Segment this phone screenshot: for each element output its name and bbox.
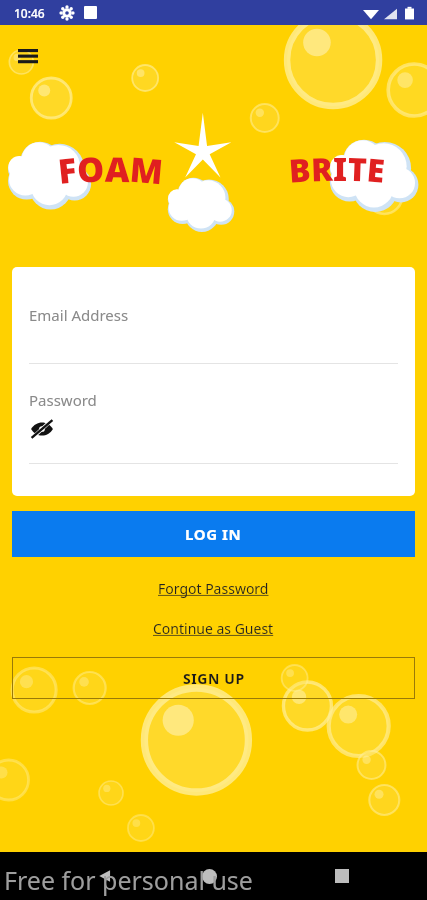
button[interactable]: Back [96, 867, 114, 885]
staticText: Forgot Password [158, 579, 269, 598]
button[interactable]: Continue as Guest [145, 615, 282, 642]
staticText: R [310, 147, 334, 191]
staticText: E [365, 147, 387, 193]
button[interactable]: SIGN UP [12, 657, 415, 699]
button[interactable]: Forgot Password [150, 575, 277, 602]
button[interactable]: Password [29, 390, 398, 464]
button[interactable]: Menu [8, 36, 48, 76]
staticText: B [287, 147, 312, 193]
staticText: F [56, 146, 79, 194]
staticText: I [333, 147, 348, 191]
staticText: Email Address [29, 305, 129, 325]
button[interactable]: Email Address [29, 296, 398, 364]
staticText: Password [29, 390, 97, 410]
other: Show password [29, 418, 55, 440]
staticText: T [347, 147, 368, 191]
staticText: Free for personal use [4, 863, 253, 897]
staticText: LOG IN [185, 524, 242, 544]
staticText: M [128, 146, 165, 194]
staticText: O [76, 145, 106, 193]
staticText: SIGN UP [183, 669, 245, 688]
staticText: Continue as Guest [153, 619, 274, 638]
staticText: A [105, 146, 130, 192]
button[interactable]: LOG IN [12, 511, 415, 557]
button[interactable]: Home [202, 869, 217, 884]
staticText: 10:46 [14, 5, 45, 21]
